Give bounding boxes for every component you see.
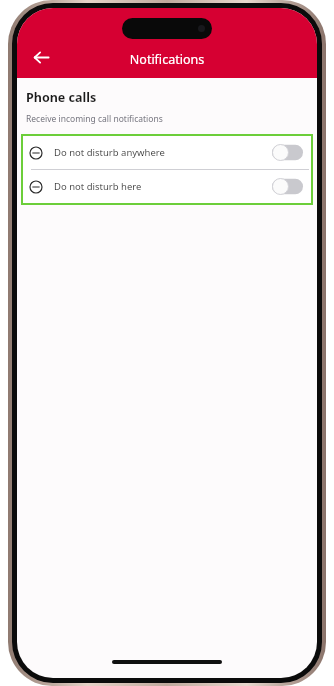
button[interactable]: Do not disturb anywhere xyxy=(23,136,311,169)
staticText: Phone calls xyxy=(26,89,97,106)
staticText: Do not disturb here xyxy=(54,180,272,193)
staticText: Notifications xyxy=(17,51,317,68)
button[interactable]: Do not disturb here xyxy=(23,170,311,203)
staticText: Receive incoming call notifications xyxy=(26,113,163,125)
button[interactable]: Back xyxy=(24,40,58,74)
button[interactable]: Do not disturb anywhere xyxy=(272,144,303,161)
staticText: Do not disturb anywhere xyxy=(54,146,272,159)
button[interactable]: Do not disturb here xyxy=(272,178,303,195)
